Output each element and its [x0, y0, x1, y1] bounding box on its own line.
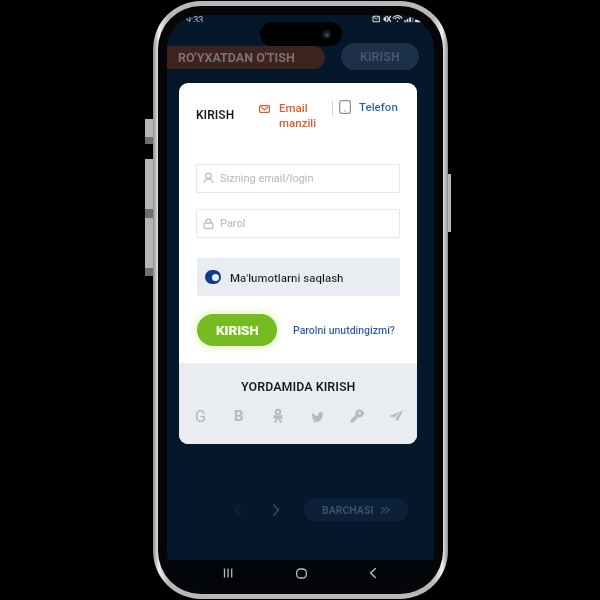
- button[interactable]: Email manzili: [259, 101, 317, 130]
- button[interactable]: Back: [361, 561, 385, 585]
- button[interactable]: Recents: [216, 561, 240, 585]
- button[interactable]: VK: [229, 406, 249, 426]
- button[interactable]: Parol: [202, 209, 400, 238]
- staticText: Telefon: [359, 100, 398, 113]
- staticText: B: [234, 407, 244, 425]
- staticText: Email manzili: [279, 101, 317, 130]
- button[interactable]: RO'YXATDAN O'TISH: [167, 46, 325, 69]
- button[interactable]: Odnoklassniki: [268, 406, 288, 426]
- button[interactable]: KIRISH: [197, 314, 277, 346]
- staticText: KIRISH: [216, 322, 259, 338]
- button[interactable]: Telegram: [386, 406, 406, 426]
- button[interactable]: Previous: [231, 503, 245, 517]
- button[interactable]: Parolni unutdingizmi?: [293, 322, 395, 338]
- staticText: 9:33: [186, 15, 204, 22]
- button[interactable]: BARCHASI: [304, 498, 408, 521]
- staticText: Ma'lumotlarni saqlash: [230, 271, 344, 284]
- staticText: YORDAMIDA KIRISH: [241, 379, 356, 394]
- button[interactable]: Twitter: [308, 406, 328, 426]
- button[interactable]: Mail.ru: [347, 406, 367, 426]
- button[interactable]: KIRISH: [341, 43, 419, 70]
- staticText: RO'YXATDAN O'TISH: [178, 50, 295, 65]
- button[interactable]: Sizning email/login: [202, 164, 400, 193]
- staticText: KIRISH: [360, 49, 400, 64]
- button[interactable]: Google: [190, 406, 210, 426]
- staticText: Parolni unutdingizmi?: [293, 324, 395, 336]
- staticText: Parol: [220, 217, 246, 230]
- staticText: BARCHASI: [322, 504, 374, 516]
- button[interactable]: Next: [269, 503, 283, 517]
- button[interactable]: Telefon: [339, 100, 398, 114]
- button[interactable]: Ma'lumotlarni saqlash: [197, 258, 400, 296]
- staticText: Sizning email/login: [220, 172, 314, 185]
- staticText: KIRISH: [196, 108, 235, 122]
- button[interactable]: Home: [289, 561, 313, 585]
- staticText: G: [195, 407, 206, 426]
